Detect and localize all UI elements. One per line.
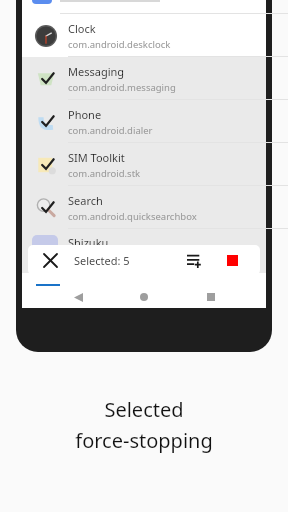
staticText: Selected: 5 xyxy=(74,253,130,268)
staticText: com.android.dialer xyxy=(68,124,153,137)
button[interactable]: Home xyxy=(133,286,155,308)
button[interactable]: Search xyxy=(22,186,266,229)
button[interactable]: Force stop xyxy=(218,246,246,274)
staticText: SIM Toolkit xyxy=(68,150,125,165)
staticText: com.android.stk xyxy=(68,167,141,180)
staticText: Phone xyxy=(68,107,102,122)
button[interactable]: SIM Toolkit xyxy=(22,143,266,186)
staticText: com.android.quicksearchbox xyxy=(68,210,197,223)
staticText: Search xyxy=(68,193,103,208)
staticText: com.android.deskclock xyxy=(68,38,171,51)
button[interactable]: Clock xyxy=(22,14,266,57)
staticText: Selected xyxy=(104,396,184,423)
button[interactable]: Messaging xyxy=(22,57,266,100)
staticText: Shizuku xyxy=(68,235,109,250)
staticText: force-stopping xyxy=(75,427,213,454)
staticText: Clock xyxy=(68,21,96,36)
button[interactable]: Phone xyxy=(22,100,266,143)
button[interactable]: Back xyxy=(67,286,89,308)
button[interactable]: Add to list xyxy=(180,246,208,274)
staticText: com.android.messaging xyxy=(68,81,176,94)
button[interactable]: Close xyxy=(36,245,64,275)
button[interactable]: Recents xyxy=(200,286,222,308)
staticText: Messaging xyxy=(68,64,125,79)
